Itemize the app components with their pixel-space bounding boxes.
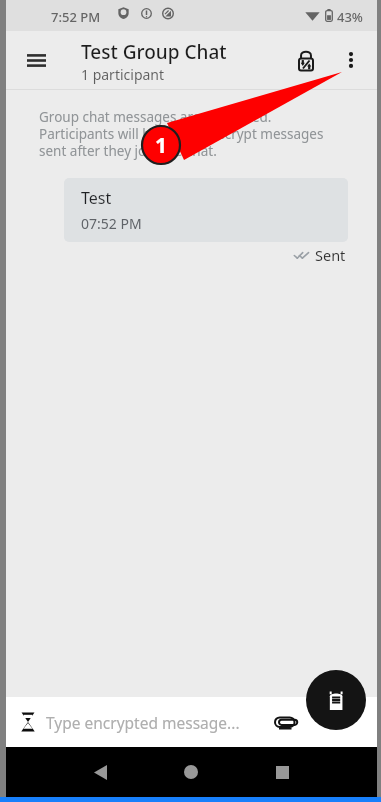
staticText: 1 [155,131,168,160]
staticText: Group chat messages are encrypted. Parti… [39,108,347,160]
staticText: 07:52 PM [81,214,142,233]
button[interactable]: More options [331,38,371,82]
staticText: 7:52 PM [51,8,101,26]
button[interactable]: Encryption info [285,38,327,82]
button[interactable]: Attach file [264,700,308,744]
button[interactable]: Home [169,750,213,794]
button[interactable]: Menu [12,38,60,82]
staticText: Test Group Chat [81,39,227,65]
staticText: 1 participant [81,65,165,84]
staticText: Type encrypted message... [46,712,240,733]
button[interactable]: Walkie talkie [306,670,366,730]
staticText: 43% [337,8,363,26]
button[interactable]: Recent apps [260,750,304,794]
staticText: Test [81,187,112,209]
button[interactable]: Test [64,178,348,242]
staticText: Sent [315,245,346,265]
button[interactable]: Disappearing messages [7,700,49,744]
button[interactable]: Back [78,750,122,794]
